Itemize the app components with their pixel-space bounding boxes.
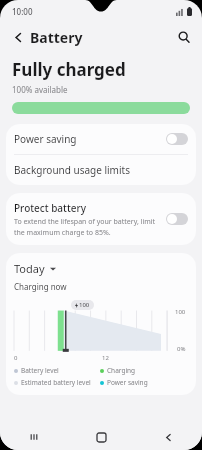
staticText: Power saving — [107, 378, 148, 387]
staticText: Fully charged — [12, 58, 126, 81]
staticText: To extend the lifespan of your battery, … — [14, 217, 160, 237]
button[interactable]: Toggle — [166, 213, 188, 225]
staticText: Power saving — [14, 132, 166, 146]
staticText: 0% — [177, 345, 186, 353]
button[interactable]: Home — [68, 424, 135, 450]
button[interactable]: Protect battery — [6, 193, 196, 245]
staticText: 12 — [102, 354, 109, 362]
button[interactable]: Background usage limits — [6, 155, 196, 185]
button[interactable]: Recents — [0, 424, 68, 450]
staticText: Battery — [30, 28, 83, 47]
staticText: Charging — [107, 366, 136, 375]
staticText: Charging now — [14, 281, 67, 292]
button[interactable]: Today — [14, 261, 56, 276]
staticText: Background usage limits — [14, 163, 130, 177]
button[interactable]: Search — [172, 25, 196, 49]
staticText: Battery level — [21, 366, 59, 375]
staticText: Estimated battery level — [21, 378, 91, 387]
button[interactable]: Toggle — [166, 133, 188, 145]
staticText: Protect battery — [14, 201, 86, 215]
button[interactable]: Back — [135, 424, 202, 450]
staticText: 10:00 — [12, 6, 33, 17]
staticText: Today — [14, 261, 45, 276]
staticText: 0 — [14, 354, 18, 362]
staticText: 100 — [175, 308, 186, 316]
staticText: 100% available — [12, 84, 68, 95]
button[interactable]: Back — [6, 25, 30, 49]
button[interactable]: Power saving — [6, 124, 196, 154]
staticText: 100 — [79, 301, 90, 309]
